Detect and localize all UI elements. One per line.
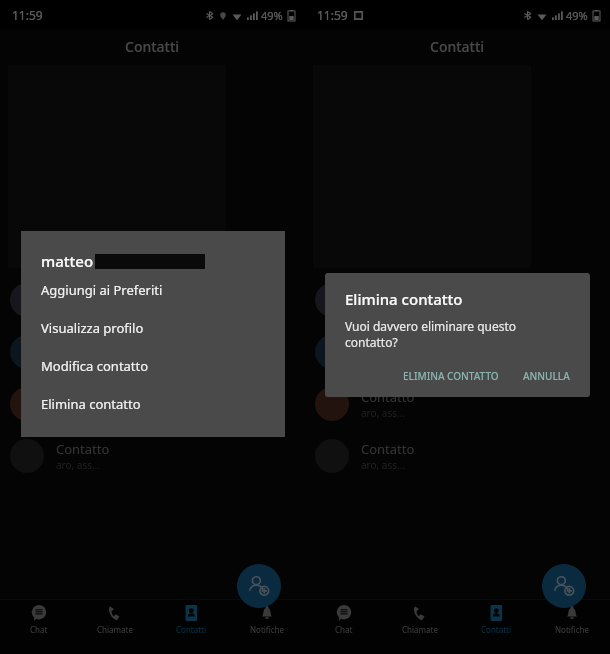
button[interactable]: Contatto xyxy=(305,430,610,482)
staticText: Contatti xyxy=(176,624,207,635)
staticText: 11:59 xyxy=(12,7,43,23)
staticText: Notifiche xyxy=(555,624,589,635)
staticText: Contatto xyxy=(56,388,110,406)
staticText: Contatto xyxy=(361,388,415,406)
staticText: aro, ass... xyxy=(56,354,101,368)
staticText: aro, ass... xyxy=(361,406,406,420)
button[interactable]: Aggiungi contatto xyxy=(237,564,281,608)
staticText: Notifiche xyxy=(250,624,284,635)
button[interactable]: Aggiungi contatto xyxy=(542,564,586,608)
button[interactable]: S xyxy=(305,274,610,326)
button[interactable]: Notifiche xyxy=(229,603,305,637)
button[interactable]: Chiamate xyxy=(77,603,153,637)
button[interactable]: Chiamate xyxy=(382,603,458,637)
button[interactable]: Elimina contatto xyxy=(21,385,285,423)
staticText: Chiamate xyxy=(402,624,438,635)
staticText: aro, ass... xyxy=(56,406,101,420)
button[interactable]: Contatto xyxy=(0,378,305,430)
staticText: aro, ass... xyxy=(56,458,101,472)
staticText: Elimina contatto xyxy=(41,395,141,413)
staticText: Elimina contatto xyxy=(345,289,463,309)
staticText: Chiamate xyxy=(97,624,133,635)
staticText: ANNULLA xyxy=(523,369,570,383)
button[interactable]: Contatto xyxy=(305,378,610,430)
staticText: contatto? xyxy=(345,334,398,350)
button[interactable]: ANNULLA xyxy=(517,365,576,387)
staticText: aro, ass... xyxy=(361,302,406,316)
staticText: Chat xyxy=(30,624,48,635)
staticText: Contatto xyxy=(361,284,415,302)
staticText: Contatto xyxy=(361,336,415,354)
staticText: matteo xyxy=(41,251,94,271)
button[interactable]: Modifica contatto xyxy=(21,347,285,385)
staticText: 11:59 xyxy=(317,7,348,23)
button[interactable]: Contatti xyxy=(153,603,229,637)
button[interactable]: Contatti xyxy=(458,603,534,637)
button[interactable]: Contatto xyxy=(0,430,305,482)
staticText: Vuoi davvero eliminare questo xyxy=(345,318,517,334)
button[interactable]: Chat xyxy=(0,603,77,637)
staticText: Contatti xyxy=(430,37,485,56)
staticText: Contatti xyxy=(125,37,180,56)
staticText: Visualizza profilo xyxy=(41,319,144,337)
button[interactable]: Notifiche xyxy=(534,603,610,637)
staticText: aro, ass... xyxy=(361,458,406,472)
staticText: Contatto xyxy=(361,440,415,458)
button[interactable]: Contatto xyxy=(0,326,305,378)
staticText: Contatti xyxy=(481,624,512,635)
button[interactable]: S xyxy=(0,274,305,326)
staticText: Contatto xyxy=(56,284,110,302)
staticText: 49% xyxy=(566,8,588,23)
button[interactable]: Visualizza profilo xyxy=(21,309,285,347)
button[interactable]: Aggiungi ai Preferiti xyxy=(21,271,285,309)
staticText: Modifica contatto xyxy=(41,357,149,375)
staticText: 49% xyxy=(261,8,283,23)
staticText: ELIMINA CONTATTO xyxy=(403,369,499,383)
staticText: Contatto xyxy=(56,440,110,458)
button[interactable]: ELIMINA CONTATTO xyxy=(397,365,505,387)
staticText: Chat xyxy=(335,624,353,635)
button[interactable]: Contatto xyxy=(305,326,610,378)
staticText: Aggiungi ai Preferiti xyxy=(41,281,163,299)
button[interactable]: Chat xyxy=(305,603,382,637)
